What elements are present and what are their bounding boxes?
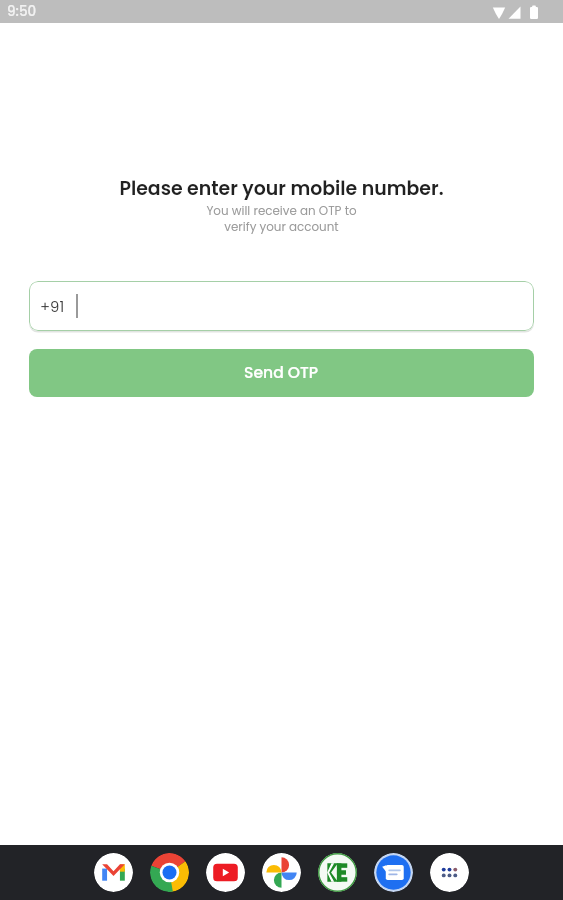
- button[interactable]: +91: [29, 281, 534, 331]
- button[interactable]: Chrome: [150, 853, 189, 892]
- staticText: Send OTP: [244, 362, 319, 384]
- button[interactable]: Send OTP: [29, 349, 534, 397]
- button[interactable]: Gmail: [94, 853, 133, 892]
- staticText: You will receive an OTP to verify your a…: [0, 203, 563, 236]
- button[interactable]: YouTube: [206, 853, 245, 892]
- button[interactable]: Photos: [262, 853, 301, 892]
- staticText: +91: [40, 296, 65, 317]
- button[interactable]: Messages: [374, 853, 413, 892]
- button[interactable]: All apps: [430, 853, 469, 892]
- staticText: Please enter your mobile number.: [0, 175, 563, 201]
- button[interactable]: KE App: [318, 853, 357, 892]
- staticText: 9:50: [7, 2, 37, 21]
